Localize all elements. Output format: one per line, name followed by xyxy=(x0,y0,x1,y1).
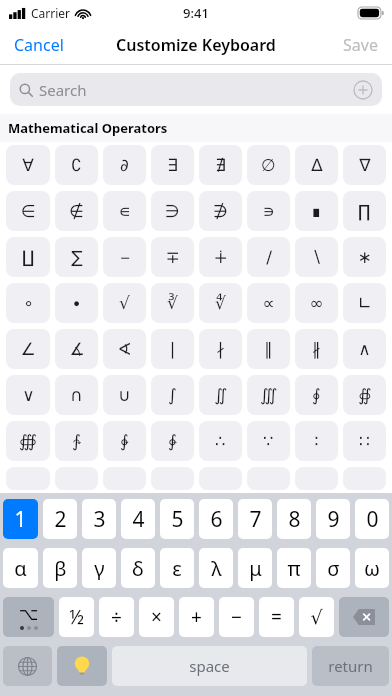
button[interactable]: 8 xyxy=(277,499,311,539)
button[interactable]: ∲ xyxy=(103,421,146,461)
button[interactable]: ∁ xyxy=(55,145,98,185)
button[interactable]: ∣ xyxy=(151,329,194,369)
button[interactable]: λ xyxy=(199,548,233,588)
button[interactable]: ∅ xyxy=(247,145,290,185)
button[interactable] xyxy=(343,467,386,490)
button[interactable]: ∭ xyxy=(247,375,290,415)
button[interactable]: ∈ xyxy=(6,191,50,231)
button[interactable]: μ xyxy=(238,548,272,588)
button[interactable]: 3 xyxy=(82,499,116,539)
button[interactable]: ω xyxy=(355,548,389,588)
button[interactable]: ∬ xyxy=(199,375,242,415)
button[interactable]: return xyxy=(312,646,389,686)
button[interactable]: ∱ xyxy=(55,421,98,461)
button[interactable]: ∙ xyxy=(55,283,98,323)
button[interactable]: ∨ xyxy=(6,375,50,415)
button[interactable] xyxy=(295,467,338,490)
button[interactable]: ∋ xyxy=(151,191,194,231)
button[interactable] xyxy=(151,467,194,490)
button[interactable]: ∮ xyxy=(295,375,338,415)
button[interactable]: 2 xyxy=(43,499,77,539)
button[interactable]: ∳ xyxy=(151,421,194,461)
button[interactable]: 0 xyxy=(355,499,389,539)
button[interactable]: ∕ xyxy=(247,237,290,277)
button[interactable]: δ xyxy=(121,548,155,588)
button[interactable]: 6 xyxy=(199,499,233,539)
button[interactable]: ∤ xyxy=(199,329,242,369)
button[interactable]: ∟ xyxy=(343,283,386,323)
button[interactable]: ∑ xyxy=(55,237,98,277)
button[interactable]: ∗ xyxy=(343,237,386,277)
button[interactable]: 7 xyxy=(238,499,272,539)
button[interactable]: ∰ xyxy=(6,421,50,461)
button[interactable]: ∴ xyxy=(199,421,242,461)
button[interactable]: − xyxy=(103,237,146,277)
button[interactable]: α xyxy=(3,548,38,588)
button[interactable]: ∃ xyxy=(151,145,194,185)
button[interactable]: ∊ xyxy=(103,191,146,231)
button[interactable]: 1 xyxy=(3,499,38,539)
button[interactable]: ∶ xyxy=(295,421,338,461)
button[interactable]: ∄ xyxy=(199,145,242,185)
button[interactable]: σ xyxy=(316,548,350,588)
button[interactable]: ∘ xyxy=(6,283,50,323)
button[interactable]: Add xyxy=(353,80,373,100)
button[interactable]: Cancel xyxy=(0,28,78,62)
button[interactable]: ∖ xyxy=(295,237,338,277)
button[interactable]: ∉ xyxy=(55,191,98,231)
button[interactable]: ∡ xyxy=(55,329,98,369)
button[interactable]: γ xyxy=(82,548,116,588)
button[interactable] xyxy=(103,467,146,490)
button[interactable]: ∆ xyxy=(295,145,338,185)
button[interactable]: ∠ xyxy=(6,329,50,369)
button[interactable]: ∫ xyxy=(151,375,194,415)
button[interactable]: ∛ xyxy=(151,283,194,323)
button[interactable]: ∞ xyxy=(295,283,338,323)
button[interactable]: ∓ xyxy=(151,237,194,277)
button[interactable] xyxy=(199,467,242,490)
button[interactable]: ∍ xyxy=(247,191,290,231)
button[interactable]: ∌ xyxy=(199,191,242,231)
button[interactable]: ∢ xyxy=(103,329,146,369)
button[interactable]: 4 xyxy=(121,499,155,539)
button[interactable]: ∵ xyxy=(247,421,290,461)
button[interactable]: ÷ xyxy=(99,597,134,637)
button[interactable]: 5 xyxy=(160,499,194,539)
button[interactable]: ∥ xyxy=(247,329,290,369)
button[interactable]: space xyxy=(112,646,307,686)
button[interactable]: ∯ xyxy=(343,375,386,415)
button[interactable]: ∇ xyxy=(343,145,386,185)
button[interactable]: ∝ xyxy=(247,283,290,323)
button[interactable]: Save xyxy=(329,28,392,62)
button[interactable]: ∔ xyxy=(199,237,242,277)
button[interactable] xyxy=(247,467,290,490)
button[interactable]: 9 xyxy=(316,499,350,539)
button[interactable]: Change keyboard xyxy=(3,646,52,686)
button[interactable]: π xyxy=(277,548,311,588)
button[interactable]: ∧ xyxy=(343,329,386,369)
button[interactable]: √ xyxy=(299,597,334,637)
button[interactable]: Suggestions xyxy=(57,646,107,686)
button[interactable]: √ xyxy=(103,283,146,323)
button[interactable]: + xyxy=(179,597,214,637)
button[interactable]: ε xyxy=(160,548,194,588)
button[interactable]: − xyxy=(219,597,254,637)
button[interactable]: × xyxy=(139,597,174,637)
button[interactable]: ∦ xyxy=(295,329,338,369)
button[interactable] xyxy=(55,467,98,490)
button[interactable]: Search xyxy=(10,73,382,106)
button[interactable]: ∷ xyxy=(343,421,386,461)
button[interactable]: ∪ xyxy=(103,375,146,415)
button[interactable]: ∐ xyxy=(6,237,50,277)
button[interactable]: = xyxy=(259,597,294,637)
button[interactable]: ∀ xyxy=(6,145,50,185)
button[interactable]: ∩ xyxy=(55,375,98,415)
button[interactable] xyxy=(6,467,50,490)
button[interactable]: ∏ xyxy=(343,191,386,231)
button[interactable]: β xyxy=(43,548,77,588)
button[interactable]: Shift layer xyxy=(3,597,54,637)
button[interactable]: ∎ xyxy=(295,191,338,231)
button[interactable]: ∂ xyxy=(103,145,146,185)
button[interactable]: Backspace xyxy=(339,597,389,637)
button[interactable]: ∜ xyxy=(199,283,242,323)
